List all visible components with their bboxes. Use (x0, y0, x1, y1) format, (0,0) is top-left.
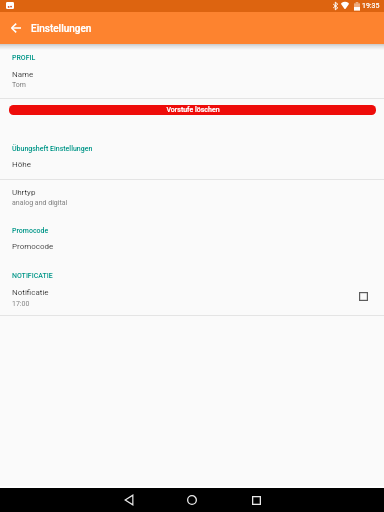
staticText: Vorstufe löschen (166, 106, 220, 114)
staticText: Tom (12, 81, 26, 89)
button[interactable]: Vorstufe löschen (9, 105, 376, 115)
button[interactable] (0, 50, 384, 98)
staticText: 17:00 (12, 300, 30, 308)
button[interactable] (0, 154, 384, 179)
button[interactable] (0, 282, 384, 315)
button[interactable]: Back (106, 488, 152, 512)
staticText: Promocode (12, 227, 49, 235)
staticText: Promocode (12, 242, 54, 251)
staticText: PROFIL (12, 54, 36, 62)
staticText: Name (12, 70, 34, 79)
staticText: 19:35 (362, 2, 380, 10)
button[interactable] (0, 180, 384, 214)
button[interactable]: Back (3, 12, 29, 44)
button[interactable]: Home (169, 488, 215, 512)
staticText: Höhe (12, 160, 31, 169)
staticText: Übungsheft Einstellungen (12, 145, 93, 153)
staticText: Notificatie (12, 288, 49, 297)
staticText: Einstellungen (31, 23, 92, 35)
button[interactable] (0, 236, 384, 262)
staticText: analog and digital (12, 199, 68, 207)
staticText: Uhrtyp (12, 188, 36, 197)
staticText: NOTIFICATIE (12, 272, 53, 280)
button[interactable]: Recent apps (233, 488, 279, 512)
